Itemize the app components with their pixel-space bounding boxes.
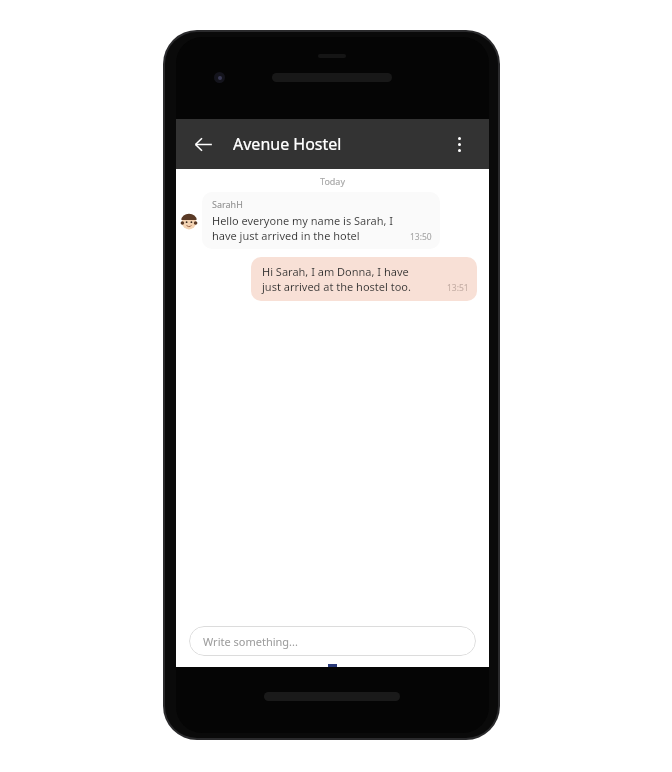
button[interactable]: SarahH bbox=[202, 192, 440, 249]
staticText: just arrived at the hostel too. bbox=[262, 279, 411, 294]
staticText: 13:50 bbox=[410, 231, 432, 243]
button[interactable]: Write something... bbox=[189, 626, 476, 656]
button[interactable]: Hi Sarah, I am Donna, I have bbox=[251, 257, 477, 301]
staticText: Hi Sarah, I am Donna, I have bbox=[262, 264, 409, 279]
staticText: have just arrived in the hotel bbox=[212, 228, 360, 243]
staticText: Avenue Hostel bbox=[233, 133, 342, 155]
staticText: Hello everyone my name is Sarah, I bbox=[212, 213, 394, 228]
staticText: 13:51 bbox=[447, 282, 469, 294]
button[interactable]: Back bbox=[184, 125, 222, 163]
staticText: Today bbox=[176, 175, 489, 187]
staticText: Write something... bbox=[203, 634, 298, 649]
button[interactable]: More options bbox=[439, 124, 479, 164]
staticText: SarahH bbox=[212, 198, 243, 210]
